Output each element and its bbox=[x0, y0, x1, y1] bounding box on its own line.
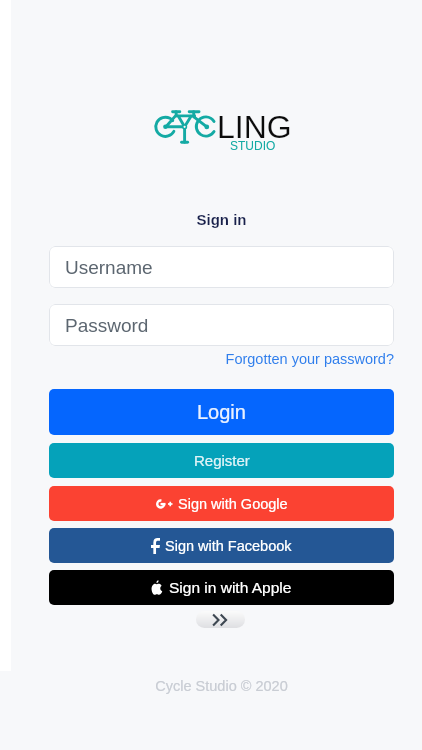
staticText: Login bbox=[197, 401, 246, 423]
button[interactable]: Login bbox=[49, 389, 394, 435]
staticText: LING bbox=[217, 109, 292, 145]
button[interactable]: Sign in with Apple bbox=[49, 570, 394, 605]
staticText: Register bbox=[194, 452, 250, 469]
button[interactable]: Sign with Google bbox=[49, 486, 394, 521]
staticText: Cycle Studio © 2020 bbox=[49, 678, 394, 694]
button[interactable]: Username bbox=[49, 246, 394, 288]
staticText: Username bbox=[65, 257, 153, 278]
button[interactable]: Password bbox=[49, 304, 394, 346]
staticText: Password bbox=[65, 315, 149, 336]
button[interactable]: Register bbox=[49, 443, 394, 478]
button[interactable]: Sign with Facebook bbox=[49, 528, 394, 563]
button[interactable]: Forgotten your password? bbox=[49, 351, 394, 367]
staticText: Sign in bbox=[49, 211, 394, 228]
staticText: STUDIO bbox=[230, 139, 276, 152]
staticText: Sign with Google bbox=[178, 496, 288, 512]
staticText: Sign with Facebook bbox=[165, 538, 292, 554]
staticText: Sign in with Apple bbox=[169, 579, 292, 596]
button[interactable]: Continue bbox=[196, 611, 245, 628]
